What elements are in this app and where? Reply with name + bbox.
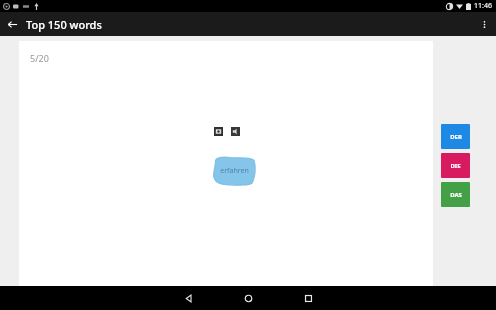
button[interactable]: Audio [231,127,240,136]
staticText: 5/20 [30,52,49,64]
staticText: 11:46 [474,1,492,11]
button[interactable]: More options [472,12,496,36]
button[interactable]: DER [441,124,470,149]
button[interactable]: Back [0,12,24,36]
staticText: DIE [450,162,461,170]
staticText: Top 150 words [26,17,102,32]
button[interactable]: Home [236,286,260,310]
button[interactable]: Image [214,127,223,136]
button[interactable]: Recent apps [296,286,320,310]
staticText: DAS [450,191,462,199]
button[interactable]: DAS [441,182,470,207]
button[interactable]: DIE [441,153,470,178]
staticText: DER [450,133,462,141]
staticText: erfahren [220,166,249,176]
button[interactable]: Back [176,286,200,310]
